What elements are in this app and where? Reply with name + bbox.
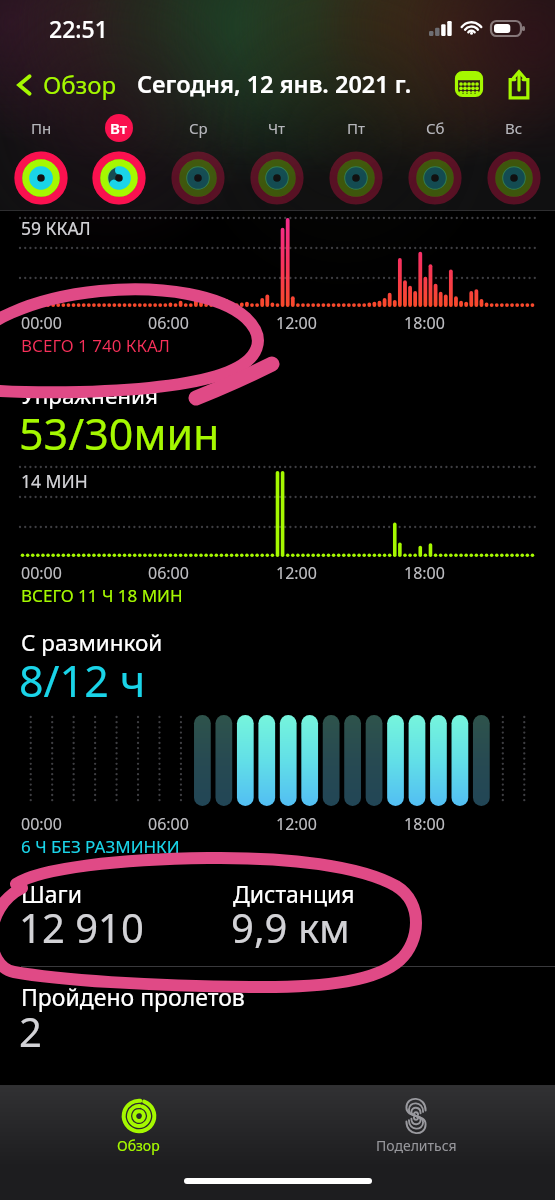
staticText: Ср	[189, 118, 208, 138]
button[interactable]: Поделиться	[497, 62, 541, 106]
staticText: 53/30мин	[19, 404, 220, 463]
staticText: 00:00	[21, 813, 62, 835]
staticText: Пройдено пролетов	[21, 981, 245, 1012]
staticText: Обзор	[117, 1136, 160, 1155]
staticText: 00:00	[21, 312, 62, 334]
staticText: Обзор	[43, 68, 117, 101]
staticText: 22:51	[49, 13, 108, 44]
staticText: 9,9 км	[231, 900, 350, 954]
staticText: Дистанция	[233, 878, 355, 909]
staticText: 06:00	[148, 813, 189, 835]
staticText: Вс	[505, 118, 523, 138]
staticText: Поделиться	[376, 1136, 457, 1155]
button[interactable]: Поделиться	[277, 1086, 555, 1166]
staticText: 06:00	[148, 562, 189, 584]
staticText: Вт	[110, 118, 128, 138]
staticText: Пт	[347, 118, 365, 138]
staticText: 59 ККАЛ	[21, 216, 91, 240]
button[interactable]: Календарь	[447, 62, 491, 106]
staticText: 12:00	[276, 312, 317, 334]
button[interactable]: Пн	[2, 110, 80, 211]
staticText: 8/12 ч	[19, 651, 146, 710]
staticText: С разминкой	[21, 627, 163, 658]
staticText: 18:00	[404, 312, 445, 334]
staticText: 18:00	[404, 562, 445, 584]
staticText: 12 910	[19, 900, 144, 954]
button[interactable]: Сб	[395, 110, 474, 211]
staticText: 14 МИН	[21, 469, 88, 493]
staticText: 6 Ч БЕЗ РАЗМИНКИ	[21, 835, 180, 858]
staticText: Упражнения	[21, 380, 159, 411]
staticText: 12:00	[276, 813, 317, 835]
button[interactable]: Вс	[474, 110, 553, 211]
button[interactable]: Вт	[80, 110, 158, 211]
button[interactable]: Чт	[237, 110, 316, 211]
staticText: 2	[19, 1004, 42, 1058]
staticText: 18:00	[404, 813, 445, 835]
staticText: 12:00	[276, 562, 317, 584]
staticText: ВСЕГО 11 Ч 18 МИН	[21, 584, 183, 607]
staticText: Пн	[31, 118, 52, 138]
staticText: Чт	[268, 118, 286, 138]
staticText: 06:00	[148, 312, 189, 334]
staticText: 00:00	[21, 562, 62, 584]
button[interactable]: Обзор	[0, 1086, 277, 1166]
button[interactable]: Обзор	[16, 68, 117, 101]
button[interactable]: Ср	[158, 110, 237, 211]
staticText: Сегодня, 12 янв. 2021 г.	[137, 68, 412, 100]
staticText: Сб	[426, 118, 445, 138]
staticText: ВСЕГО 1 740 ККАЛ	[21, 334, 170, 357]
button[interactable]: Пт	[316, 110, 395, 211]
staticText: Шаги	[21, 878, 82, 909]
